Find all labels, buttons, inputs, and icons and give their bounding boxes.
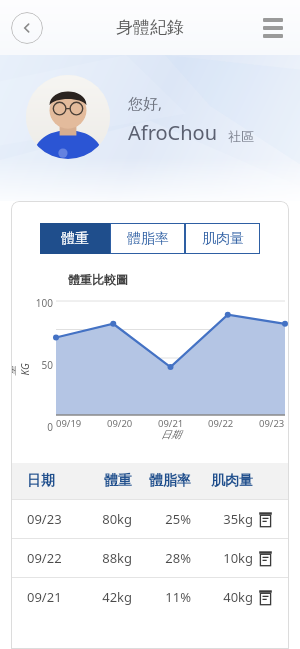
button[interactable]: 體脂率 bbox=[110, 223, 185, 254]
staticText: 100 bbox=[27, 296, 53, 310]
button[interactable]: Delete record bbox=[258, 590, 273, 605]
staticText: 身體紀錄 bbox=[116, 17, 184, 38]
staticText: 11% bbox=[132, 588, 191, 606]
staticText: 日期 bbox=[27, 472, 81, 490]
button[interactable]: 09/23 bbox=[11, 500, 289, 538]
staticText: 50 bbox=[27, 358, 53, 372]
staticText: 09/20 bbox=[107, 417, 133, 430]
staticText: 日期 bbox=[161, 428, 181, 441]
button[interactable]: Back bbox=[11, 12, 43, 44]
staticText: 09/23 bbox=[259, 417, 285, 430]
button[interactable]: 09/22 bbox=[11, 539, 289, 577]
staticText: 09/19 bbox=[56, 417, 82, 430]
staticText: 09/23 bbox=[27, 510, 81, 528]
staticText: 體重 bbox=[81, 472, 132, 490]
button[interactable]: Delete record bbox=[258, 512, 273, 527]
button[interactable]: Menu bbox=[256, 11, 290, 45]
staticText: 體重 bbox=[61, 230, 89, 248]
staticText: 28% bbox=[132, 549, 191, 567]
staticText: 體重 KG bbox=[11, 359, 31, 375]
staticText: 10kg bbox=[191, 549, 253, 567]
button[interactable]: Delete record bbox=[258, 551, 273, 566]
staticText: 0 bbox=[27, 420, 53, 434]
staticText: 09/22 bbox=[208, 417, 234, 430]
staticText: 09/21 bbox=[27, 588, 81, 606]
staticText: 40kg bbox=[191, 588, 253, 606]
button[interactable]: 體重 bbox=[40, 223, 110, 254]
staticText: AfroChou bbox=[128, 119, 218, 146]
button[interactable]: Profile photo bbox=[26, 75, 110, 159]
staticText: 體脂率 bbox=[127, 230, 169, 248]
staticText: 88kg bbox=[81, 549, 132, 567]
button[interactable]: 社區 bbox=[228, 128, 254, 144]
staticText: 肌肉量 bbox=[191, 472, 253, 490]
staticText: 09/22 bbox=[27, 549, 81, 567]
staticText: 09/21 bbox=[158, 417, 184, 430]
staticText: 42kg bbox=[81, 588, 132, 606]
staticText: 80kg bbox=[81, 510, 132, 528]
button[interactable]: 09/21 bbox=[11, 578, 289, 616]
staticText: 肌肉量 bbox=[202, 230, 244, 248]
staticText: 體重比較圖 bbox=[68, 272, 128, 287]
staticText: 25% bbox=[132, 510, 191, 528]
button[interactable]: 肌肉量 bbox=[185, 223, 260, 254]
staticText: 35kg bbox=[191, 510, 253, 528]
staticText: 體脂率 bbox=[132, 472, 191, 490]
staticText: 您好, bbox=[128, 93, 163, 113]
